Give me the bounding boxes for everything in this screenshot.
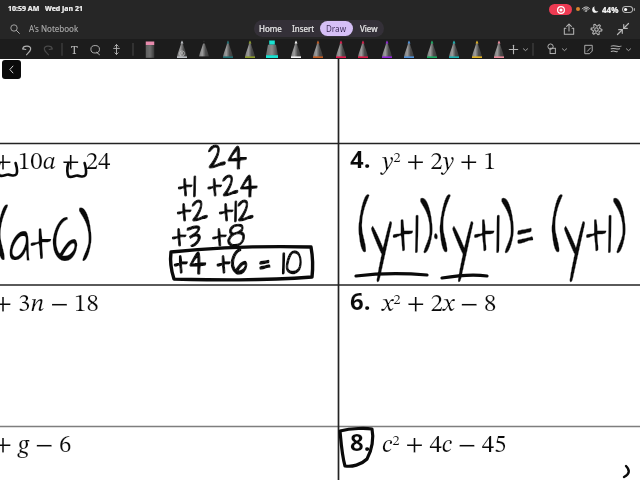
staticText: (y+1)·(y+1)= (y+1)	[358, 186, 627, 280]
button[interactable]: Home	[254, 20, 287, 37]
staticText: Home	[259, 23, 282, 34]
button[interactable]: Share	[560, 20, 578, 38]
staticText: Wed Jan 21	[45, 4, 83, 14]
staticText: +1 +24	[178, 160, 258, 213]
staticText: Draw	[326, 23, 347, 34]
staticText: 24	[208, 130, 248, 186]
staticText: +4 +6 = 10	[174, 237, 302, 290]
button[interactable]: Move	[109, 42, 123, 56]
staticText: 8.	[350, 425, 371, 458]
button[interactable]: Search	[8, 22, 22, 36]
button[interactable]: Add pen	[505, 41, 521, 57]
button[interactable]: Back	[2, 60, 21, 79]
staticText: + 3n − 18	[0, 292, 99, 317]
staticText: (y+1)·(y+1)= (y+1)	[358, 186, 627, 280]
button[interactable]: Sticky note	[580, 41, 596, 57]
button[interactable]: Insert	[287, 20, 320, 37]
staticText: 6.	[350, 284, 371, 317]
staticText: 24	[208, 130, 248, 186]
staticText: + g − 6	[0, 433, 72, 458]
staticText: c2 + 4c − 45	[382, 433, 507, 458]
staticText: +4 +6 = 10	[174, 237, 302, 290]
button[interactable]: Lasso select	[88, 42, 102, 56]
staticText: View	[360, 23, 378, 34]
staticText: y2 + 2y + 1	[382, 150, 496, 175]
button[interactable]: Text	[67, 42, 81, 56]
button[interactable]: Undo	[20, 42, 34, 56]
staticText: 44%	[602, 4, 619, 15]
button[interactable]: Ink to text	[608, 41, 624, 57]
staticText: +3 +8	[172, 210, 246, 263]
staticText: + 10a + 24	[0, 150, 111, 175]
button[interactable]: Redo	[40, 42, 54, 56]
staticText: x2 + 2x − 8	[382, 292, 497, 317]
staticText: A's Notebook	[29, 23, 79, 34]
staticText: +2 +12	[177, 185, 254, 238]
staticText: 10:59 AM	[8, 4, 40, 14]
staticText: 4.	[350, 142, 371, 175]
staticText: +1 +24	[178, 160, 258, 213]
staticText: )(a+6)	[0, 196, 93, 288]
button[interactable]: Settings	[587, 20, 605, 38]
staticText: T	[71, 42, 78, 56]
button[interactable]: Collapse	[614, 20, 632, 38]
button[interactable]: Recording	[549, 4, 572, 15]
button[interactable]: Shapes	[544, 41, 560, 57]
staticText: +3 +8	[172, 210, 246, 263]
staticText: Insert	[292, 23, 315, 34]
button[interactable]: Draw	[320, 21, 353, 36]
staticText: +2 +12	[177, 185, 254, 238]
button[interactable]: View	[353, 20, 384, 37]
staticText: )(a+6)	[0, 196, 93, 288]
